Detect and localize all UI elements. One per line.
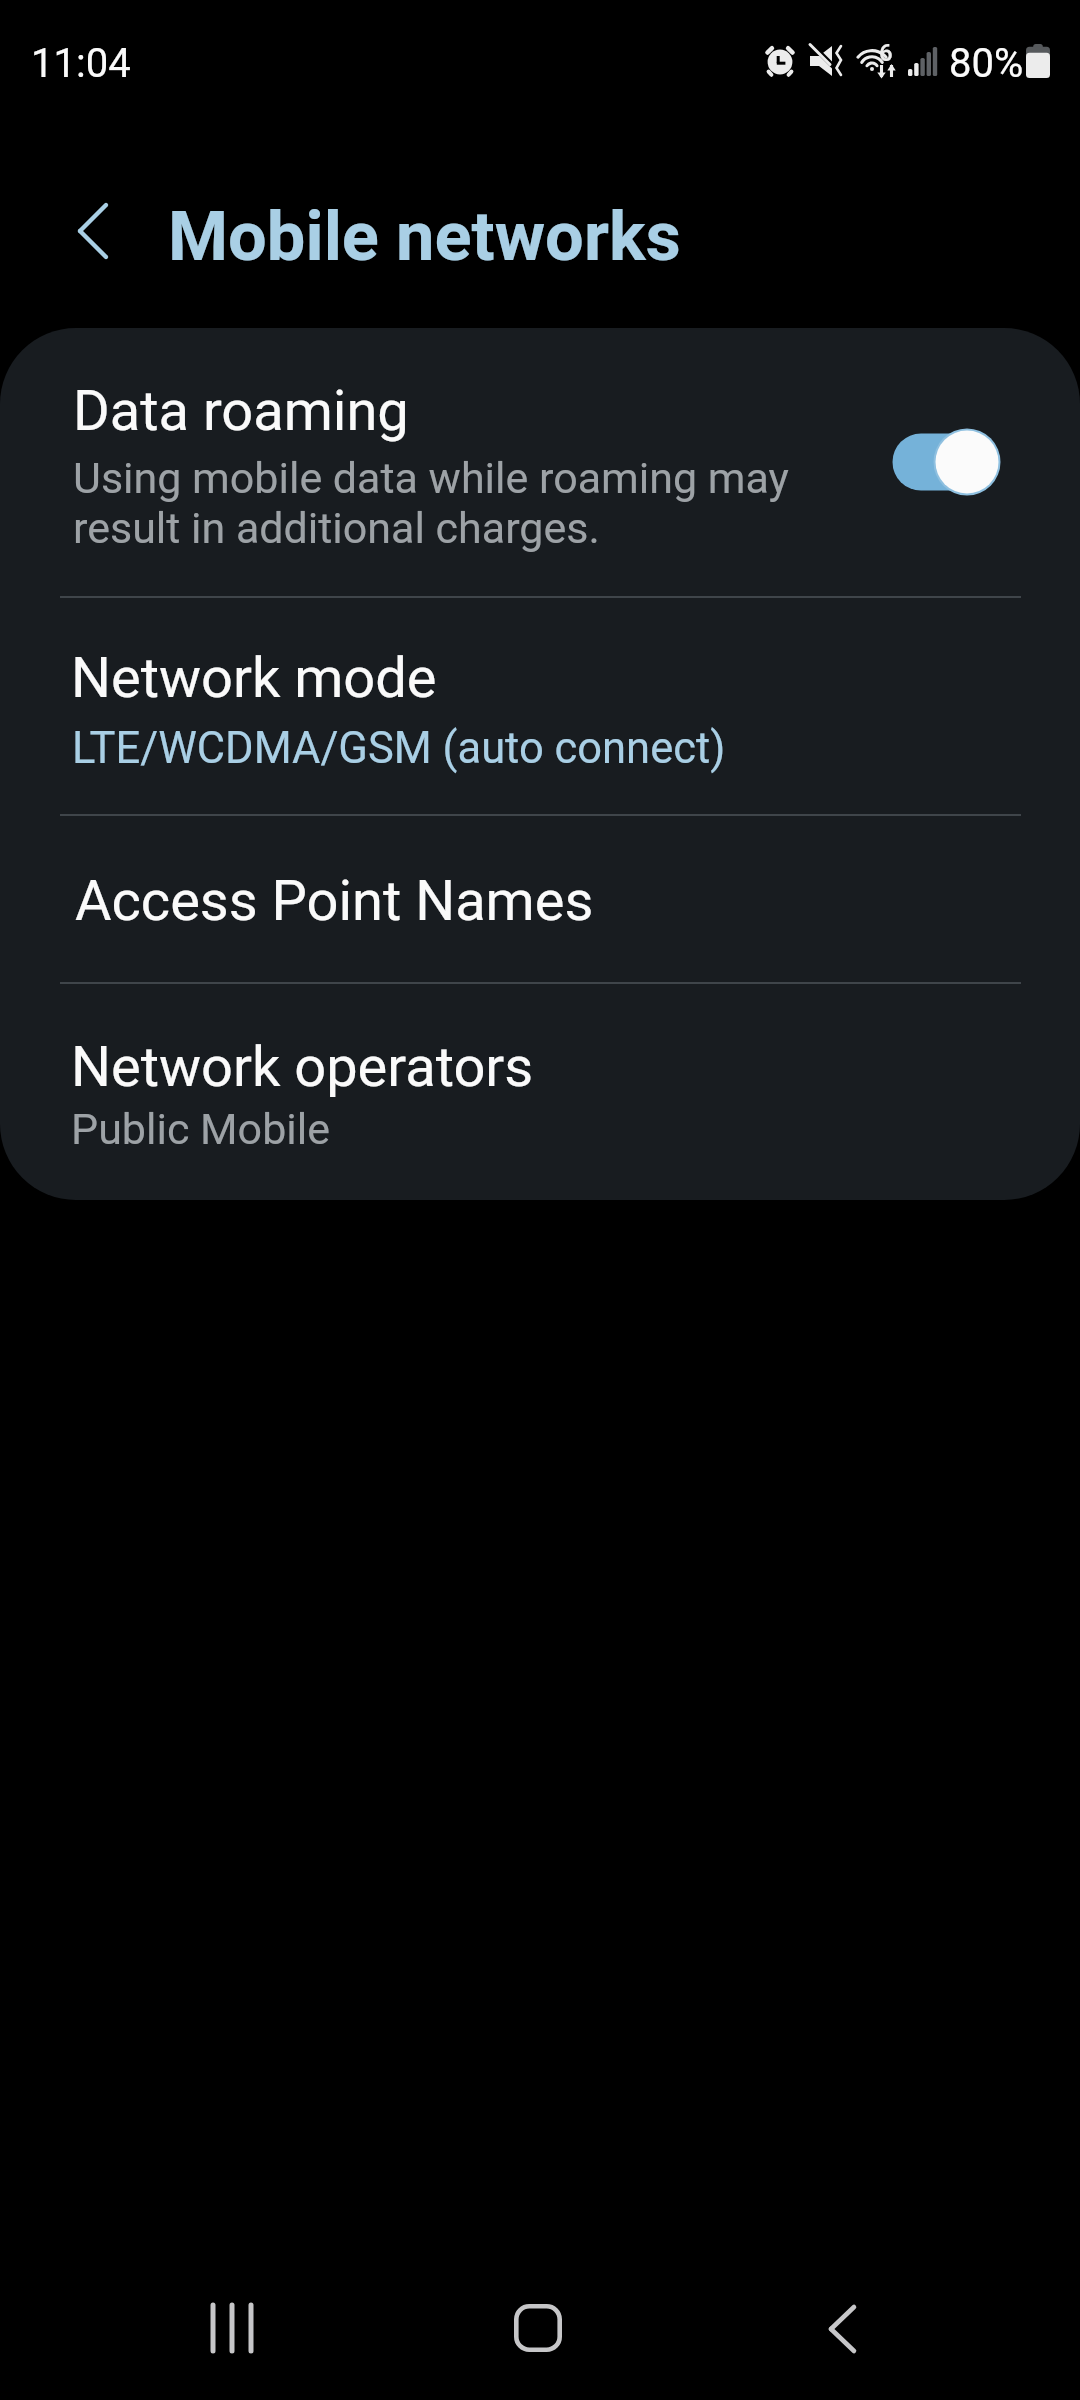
other: Mobile signal strength bbox=[906, 44, 940, 78]
staticText: Data roaming bbox=[73, 378, 409, 444]
staticText: 11:04 bbox=[31, 40, 131, 87]
staticText: Using mobile data while roaming may resu… bbox=[73, 453, 789, 553]
staticText: Network mode bbox=[71, 645, 437, 711]
staticText: LTE/WCDMA/GSM (auto connect) bbox=[72, 723, 726, 774]
staticText: Mobile networks bbox=[168, 196, 681, 276]
button[interactable]: Recent apps bbox=[173, 2268, 293, 2388]
button[interactable]: Navigate up bbox=[45, 183, 141, 279]
button[interactable]: Home bbox=[478, 2268, 598, 2388]
staticText: Public Mobile bbox=[71, 1104, 330, 1154]
staticText: 6 bbox=[879, 39, 893, 67]
button[interactable]: Back bbox=[772, 2268, 892, 2388]
staticText: Access Point Names bbox=[75, 868, 594, 934]
button[interactable]: Access Point Names bbox=[0, 818, 1080, 983]
button[interactable]: Network mode bbox=[0, 600, 1080, 815]
button[interactable]: Data roaming bbox=[0, 328, 1080, 597]
other: Sound off, vibrate bbox=[808, 44, 844, 78]
button[interactable]: Data roaming, on bbox=[868, 402, 1024, 522]
staticText: Network operators bbox=[71, 1034, 534, 1100]
other: Wi-Fi connected bbox=[852, 40, 902, 82]
staticText: 80% bbox=[949, 40, 1024, 87]
button[interactable]: Network operators bbox=[0, 986, 1080, 1200]
other: Alarm set bbox=[762, 42, 800, 82]
